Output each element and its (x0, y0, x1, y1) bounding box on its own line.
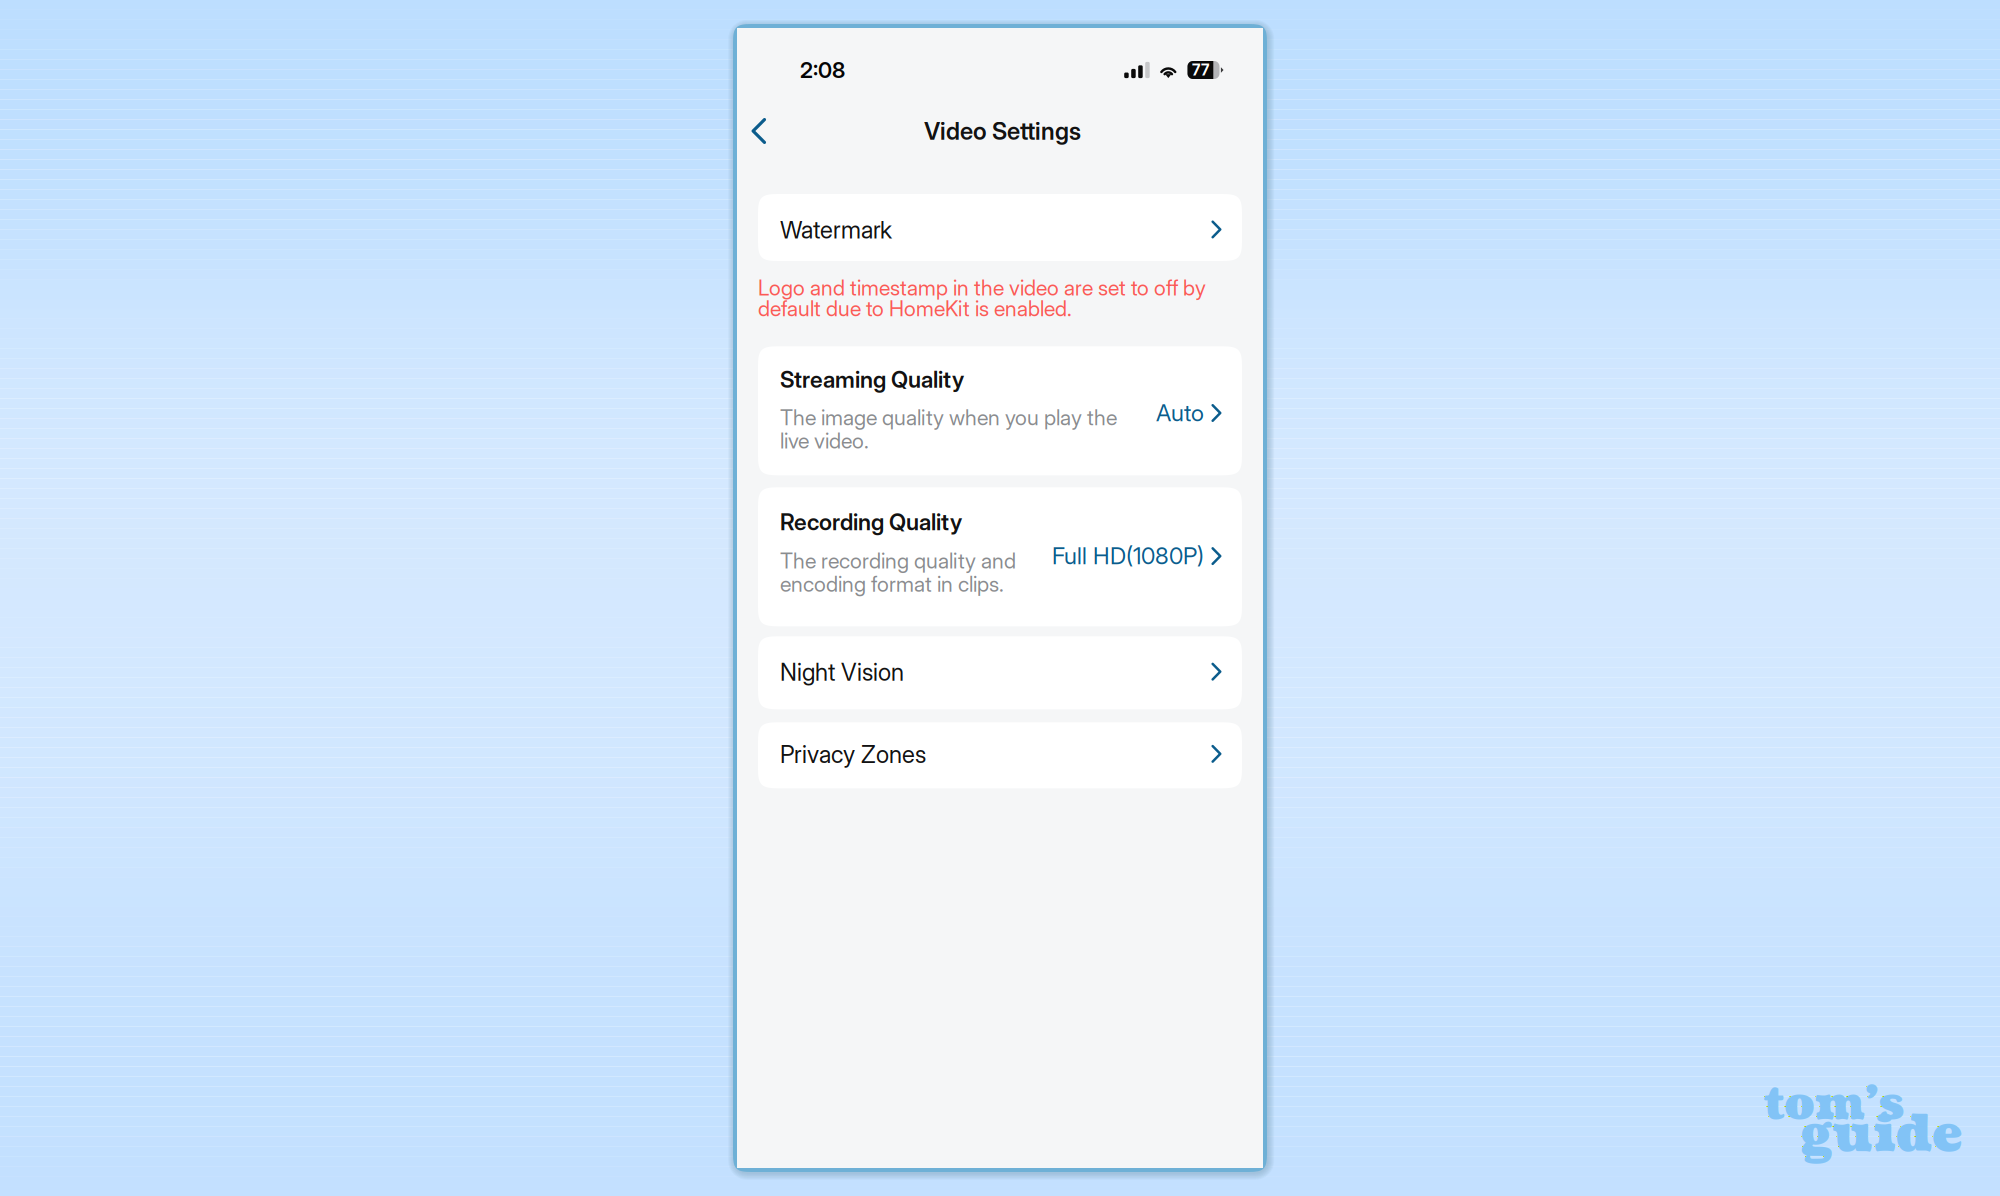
button[interactable]: Recording Quality (758, 487, 1242, 626)
staticText: tom's (1764, 1072, 1904, 1136)
staticText: Video Settings (924, 117, 1081, 145)
staticText: Recording Quality (780, 508, 962, 536)
staticText: 2:08 (800, 57, 845, 83)
button[interactable]: Privacy Zones (758, 722, 1242, 788)
staticText: encoding format in clips. (780, 571, 1004, 597)
staticText: The recording quality and (780, 548, 1016, 573)
staticText: default due to HomeKit is enabled. (758, 296, 1072, 321)
staticText: The image quality when you play the (780, 405, 1117, 430)
staticText: 77 (1192, 61, 1209, 79)
button[interactable]: Back (737, 107, 793, 155)
button[interactable]: Streaming Quality (758, 346, 1242, 475)
staticText: Night Vision (780, 658, 904, 686)
staticText: Streaming Quality (780, 366, 964, 393)
staticText: live video. (780, 428, 869, 454)
staticText: Privacy Zones (780, 740, 926, 769)
staticText: Full HD(1080P) (1052, 542, 1204, 570)
staticText: Logo and timestamp in the video are set … (758, 275, 1206, 301)
staticText: guide (1800, 1099, 1962, 1170)
staticText: Watermark (780, 216, 892, 244)
button[interactable]: Watermark (758, 194, 1242, 261)
staticText: Auto (1156, 399, 1204, 427)
button[interactable]: Night Vision (758, 636, 1242, 709)
